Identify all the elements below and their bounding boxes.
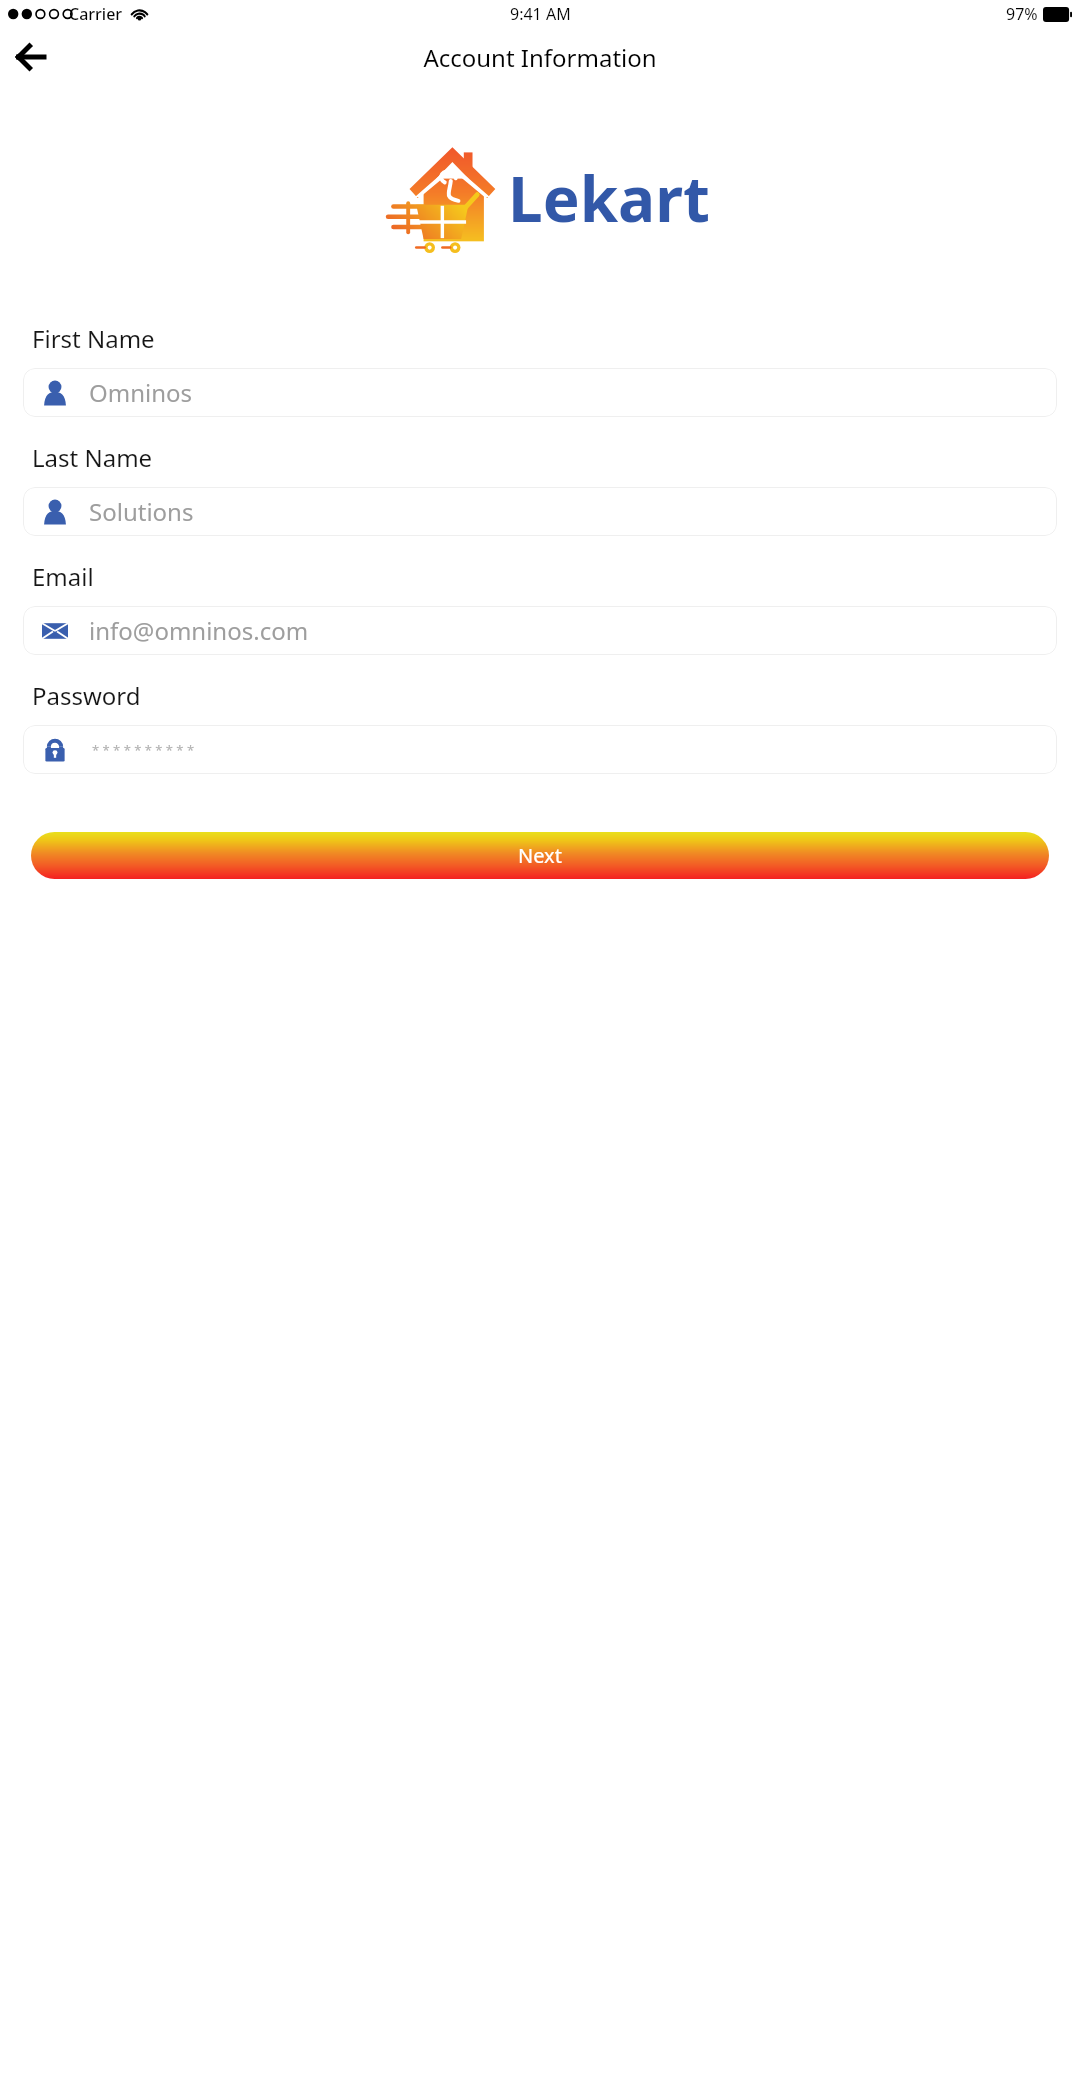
staticText: Next — [518, 842, 562, 869]
staticText: Omninos — [89, 376, 193, 409]
staticText: First Name — [32, 322, 155, 355]
button[interactable]: Omninos — [23, 368, 1057, 417]
staticText: Solutions — [89, 495, 194, 528]
staticText: 97% — [1006, 3, 1038, 25]
staticText: Password — [32, 679, 141, 712]
staticText: Email — [32, 560, 94, 593]
button[interactable]: Solutions — [23, 487, 1057, 536]
staticText: Account Information — [423, 41, 657, 74]
button[interactable]: Next — [31, 832, 1049, 879]
button[interactable]: Back — [6, 33, 54, 81]
staticText: Carrier — [69, 3, 123, 25]
staticText: * * * * * * * * * * — [92, 741, 195, 759]
button[interactable]: * * * * * * * * * * — [23, 725, 1057, 774]
staticText: Lekart — [508, 156, 710, 240]
staticText: 9:41 AM — [510, 3, 571, 25]
staticText: info@omninos.com — [89, 614, 309, 647]
button[interactable]: info@omninos.com — [23, 606, 1057, 655]
staticText: Last Name — [32, 441, 153, 474]
